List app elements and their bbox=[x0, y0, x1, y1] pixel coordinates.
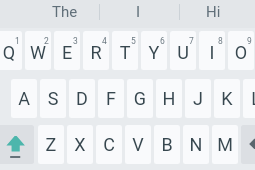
button[interactable]: X bbox=[67, 125, 93, 164]
button[interactable]: Shift bbox=[0, 125, 34, 164]
staticText: 4 bbox=[102, 36, 107, 46]
button[interactable]: E bbox=[54, 31, 80, 70]
staticText: O bbox=[228, 42, 254, 70]
staticText: 5 bbox=[131, 36, 136, 46]
button[interactable]: L bbox=[243, 79, 255, 118]
staticText: E bbox=[54, 42, 80, 70]
staticText: U bbox=[170, 42, 196, 70]
button[interactable]: Y bbox=[141, 31, 167, 70]
staticText: Z bbox=[38, 134, 64, 164]
button[interactable]: U bbox=[170, 31, 196, 70]
staticText: Hi bbox=[206, 3, 221, 21]
button[interactable]: F bbox=[98, 79, 124, 118]
button[interactable]: A bbox=[11, 79, 37, 118]
staticText: Y bbox=[141, 42, 167, 70]
button[interactable]: R bbox=[83, 31, 109, 70]
button[interactable]: S bbox=[40, 79, 66, 118]
staticText: G bbox=[127, 88, 153, 118]
staticText: V bbox=[125, 134, 151, 164]
staticText: 6 bbox=[160, 36, 165, 46]
staticText: C bbox=[96, 134, 122, 164]
button[interactable]: D bbox=[69, 79, 95, 118]
staticText: I bbox=[136, 3, 141, 21]
staticText: 2 bbox=[44, 36, 49, 46]
staticText: H bbox=[156, 88, 182, 118]
staticText: A bbox=[11, 88, 37, 118]
button[interactable]: I bbox=[98, 0, 178, 24]
staticText: I bbox=[199, 42, 225, 70]
staticText: R bbox=[83, 42, 109, 70]
staticText: M bbox=[212, 134, 238, 164]
button[interactable]: W bbox=[25, 31, 51, 70]
staticText: 7 bbox=[189, 36, 194, 46]
staticText: D bbox=[69, 88, 95, 118]
button[interactable]: B bbox=[154, 125, 180, 164]
button[interactable]: C bbox=[96, 125, 122, 164]
button[interactable]: H bbox=[156, 79, 182, 118]
button[interactable]: I bbox=[199, 31, 225, 70]
button[interactable]: J bbox=[185, 79, 211, 118]
button[interactable]: The bbox=[25, 0, 105, 24]
button[interactable]: G bbox=[127, 79, 153, 118]
staticText: The bbox=[52, 3, 78, 21]
button[interactable]: K bbox=[214, 79, 240, 118]
staticText: Q bbox=[0, 42, 22, 70]
staticText: 8 bbox=[218, 36, 223, 46]
staticText: K bbox=[214, 88, 240, 118]
staticText: X bbox=[67, 134, 93, 164]
staticText: 9 bbox=[247, 36, 252, 46]
staticText: B bbox=[154, 134, 180, 164]
staticText: 1 bbox=[15, 36, 20, 46]
button[interactable]: T bbox=[112, 31, 138, 70]
button[interactable]: Hi bbox=[173, 0, 253, 24]
button[interactable]: Backspace bbox=[241, 125, 255, 164]
staticText: J bbox=[185, 88, 211, 118]
staticText: W bbox=[25, 42, 51, 70]
button[interactable]: Q bbox=[0, 31, 22, 70]
staticText: F bbox=[98, 88, 124, 118]
button[interactable]: O bbox=[228, 31, 254, 70]
staticText: 3 bbox=[73, 36, 78, 46]
button[interactable]: Z bbox=[38, 125, 64, 164]
staticText: S bbox=[40, 88, 66, 118]
button[interactable]: V bbox=[125, 125, 151, 164]
staticText: N bbox=[183, 134, 209, 164]
staticText: T bbox=[112, 42, 138, 70]
button[interactable]: M bbox=[212, 125, 238, 164]
staticText: L bbox=[243, 88, 255, 118]
button[interactable]: N bbox=[183, 125, 209, 164]
